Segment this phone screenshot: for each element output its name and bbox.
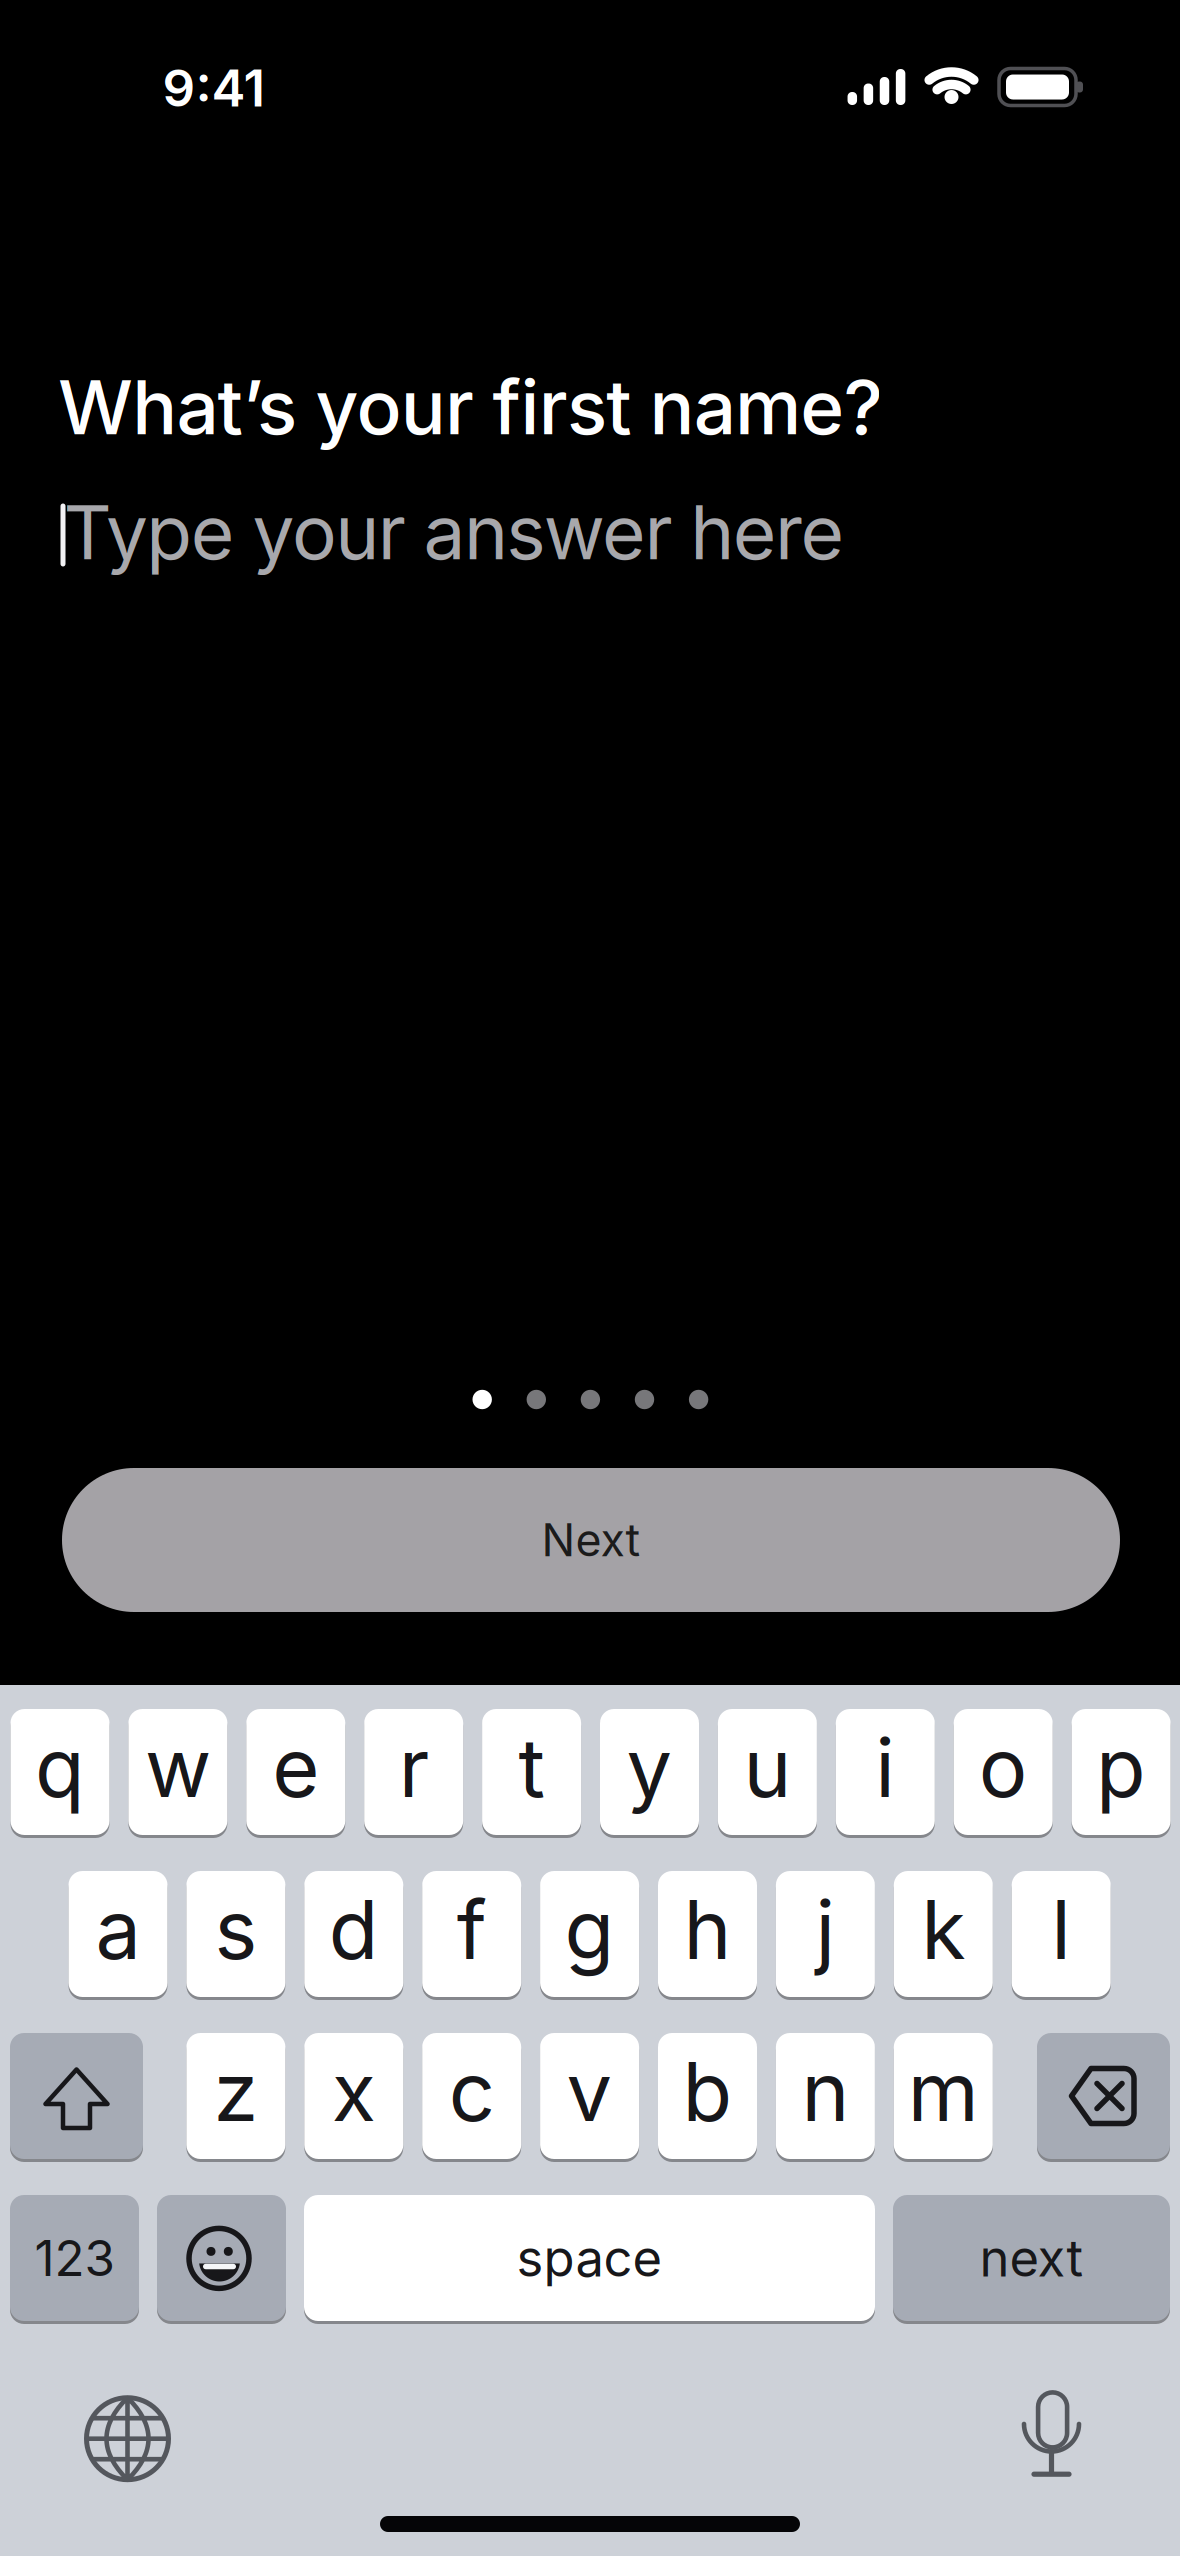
staticText: v — [567, 2042, 613, 2140]
button[interactable]: v — [540, 2033, 639, 2159]
staticText: y — [626, 1718, 672, 1816]
button[interactable]: j — [776, 1871, 875, 1997]
staticText: n — [801, 2042, 849, 2140]
button[interactable]: p — [1072, 1709, 1171, 1835]
button[interactable]: z — [186, 2033, 285, 2159]
staticText: b — [682, 2042, 732, 2140]
staticText: Type your answer here — [63, 487, 844, 577]
staticText: c — [449, 2042, 495, 2140]
button[interactable]: y — [600, 1709, 699, 1835]
staticText: f — [457, 1880, 487, 1978]
staticText: u — [743, 1718, 791, 1816]
button[interactable]: m — [894, 2033, 993, 2159]
staticText: w — [145, 1718, 211, 1816]
staticText: x — [332, 2042, 376, 2140]
button[interactable]: k — [894, 1871, 993, 1997]
button[interactable]: a — [68, 1871, 167, 1997]
button[interactable]: c — [422, 2033, 521, 2159]
staticText: next — [979, 2227, 1083, 2289]
staticText: g — [565, 1880, 615, 1978]
button[interactable]: b — [658, 2033, 757, 2159]
staticText: q — [35, 1718, 85, 1816]
button[interactable]: f — [422, 1871, 521, 1997]
button[interactable]: h — [658, 1871, 757, 1997]
staticText: a — [95, 1880, 140, 1978]
staticText: 9:41 — [162, 57, 265, 119]
staticText: j — [815, 1880, 835, 1978]
button[interactable]: n — [776, 2033, 875, 2159]
staticText: s — [214, 1880, 257, 1978]
button[interactable]: u — [718, 1709, 817, 1835]
staticText: o — [979, 1718, 1028, 1816]
button[interactable]: x — [304, 2033, 403, 2159]
staticText: m — [908, 2042, 979, 2140]
button[interactable]: d — [304, 1871, 403, 1997]
button[interactable]: g — [540, 1871, 639, 1997]
button[interactable]: Next — [62, 1468, 1120, 1612]
button[interactable]: Type your answer here — [60, 487, 860, 582]
staticText: 123 — [34, 2228, 114, 2288]
staticText: What’s your first name? — [58, 362, 882, 452]
button[interactable]: r — [364, 1709, 463, 1835]
staticText: e — [272, 1718, 319, 1816]
button[interactable]: e — [246, 1709, 345, 1835]
button[interactable]: i — [836, 1709, 935, 1835]
staticText: i — [875, 1718, 895, 1816]
staticText: p — [1096, 1718, 1146, 1816]
staticText: Next — [541, 1513, 640, 1567]
button[interactable]: space — [304, 2195, 875, 2321]
button[interactable]: q — [10, 1709, 109, 1835]
staticText: k — [921, 1880, 965, 1978]
button[interactable]: l — [1012, 1871, 1111, 1997]
staticText: space — [516, 2227, 662, 2289]
button[interactable]: w — [128, 1709, 227, 1835]
button[interactable]: Shift — [10, 2033, 143, 2159]
button[interactable]: Next keyboard — [67, 2379, 187, 2499]
button[interactable]: 123 — [10, 2195, 139, 2321]
staticText: l — [1051, 1880, 1071, 1978]
button[interactable]: Dictate — [1000, 2380, 1120, 2500]
staticText: t — [519, 1718, 545, 1816]
staticText: h — [683, 1880, 731, 1978]
button[interactable]: Delete — [1037, 2033, 1170, 2159]
button[interactable]: t — [482, 1709, 581, 1835]
button[interactable]: s — [186, 1871, 285, 1997]
button[interactable]: o — [954, 1709, 1053, 1835]
staticText: d — [329, 1880, 379, 1978]
staticText: r — [399, 1718, 429, 1816]
staticText: z — [213, 2042, 258, 2140]
button[interactable]: next — [893, 2195, 1170, 2321]
button[interactable]: Emoji — [157, 2195, 286, 2321]
